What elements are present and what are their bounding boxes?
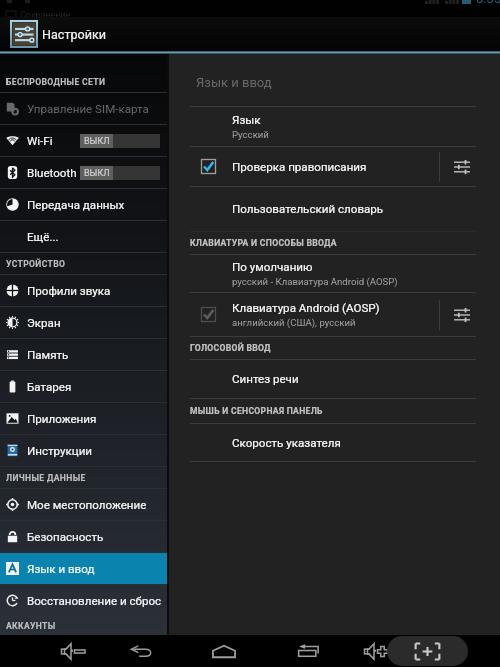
staticText: Батарея bbox=[27, 380, 72, 394]
button[interactable]: Экран bbox=[0, 307, 167, 338]
button[interactable]: Профили звука bbox=[0, 275, 167, 306]
staticText: Язык bbox=[232, 113, 261, 127]
staticText: Передача данных bbox=[27, 198, 125, 212]
button[interactable]: Инструкции bbox=[0, 435, 167, 466]
staticText: Bluetooth bbox=[27, 166, 77, 180]
staticText: Управление SIM-карта bbox=[27, 102, 149, 116]
staticText: ГОЛОСОВОЙ ВВОД bbox=[190, 343, 271, 353]
staticText: Восстановление и сброс bbox=[27, 594, 162, 608]
button[interactable]: Проверка правописания bbox=[169, 147, 500, 186]
button[interactable]: По умолчанию bbox=[169, 255, 500, 292]
staticText: Экран bbox=[27, 316, 61, 330]
staticText: Язык и ввод bbox=[27, 562, 95, 576]
staticText: Настройки bbox=[42, 27, 107, 42]
staticText: Русский bbox=[232, 129, 269, 140]
button[interactable]: Управление SIM-карта bbox=[0, 93, 167, 124]
staticText: КЛАВИАТУРА И СПОСОБЫ ВВОДА bbox=[190, 238, 337, 248]
button[interactable]: Ещё... bbox=[0, 221, 167, 252]
button[interactable]: Пользовательский словарь bbox=[169, 187, 500, 231]
button[interactable]: Recent apps bbox=[288, 635, 328, 667]
staticText: английский (США), русский bbox=[232, 317, 356, 328]
button[interactable]: Передача данных bbox=[0, 189, 167, 220]
staticText: Клавиатура Android (AOSP) bbox=[232, 301, 380, 315]
staticText: Язык и ввод bbox=[196, 75, 272, 90]
button[interactable]: Keyboard settings bbox=[440, 293, 484, 336]
button[interactable]: Home bbox=[204, 635, 244, 667]
staticText: АККАУНТЫ bbox=[6, 621, 56, 631]
button[interactable]: Wi-Fi bbox=[0, 125, 167, 156]
button[interactable]: Восстановление и сброс bbox=[0, 585, 167, 616]
button[interactable]: Bluetooth bbox=[0, 157, 167, 188]
staticText: По умолчанию bbox=[232, 260, 313, 274]
staticText: 0:35 bbox=[476, 0, 500, 6]
button[interactable]: Язык bbox=[169, 107, 500, 146]
staticText: Ещё... bbox=[27, 230, 59, 244]
staticText: МЫШЬ И СЕНСОРНАЯ ПАНЕЛЬ bbox=[190, 406, 323, 416]
staticText: Инструкции bbox=[27, 444, 93, 458]
staticText: ВЫКЛ bbox=[84, 168, 110, 179]
staticText: Проверка правописания bbox=[232, 160, 367, 174]
button[interactable]: Screenshot bbox=[387, 636, 468, 666]
staticText: русский - Клавиатура Android (AOSP) bbox=[232, 276, 398, 287]
staticText: ЛИЧНЫЕ ДАННЫЕ bbox=[6, 473, 86, 483]
button[interactable]: Приложения bbox=[0, 403, 167, 434]
button[interactable]: Память bbox=[0, 339, 167, 370]
button[interactable]: Синтез речи bbox=[169, 360, 500, 398]
staticText: Wi-Fi bbox=[27, 134, 53, 148]
button[interactable]: Скорость указателя bbox=[169, 424, 500, 461]
button[interactable]: Back bbox=[121, 635, 161, 667]
staticText: Приложения bbox=[27, 412, 97, 426]
button[interactable]: Settings app icon bbox=[10, 20, 38, 48]
staticText: Память bbox=[27, 348, 69, 362]
staticText: Мое местоположение bbox=[27, 498, 147, 512]
staticText: УСТРОЙСТВО bbox=[6, 259, 66, 269]
staticText: Пользовательский словарь bbox=[232, 202, 384, 216]
button[interactable]: Volume up bbox=[356, 635, 396, 667]
staticText: Сохранение bbox=[20, 10, 71, 21]
staticText: Синтез речи bbox=[232, 372, 299, 386]
button[interactable]: Клавиатура Android (AOSP) bbox=[169, 293, 500, 336]
staticText: БЕСПРОВОДНЫЕ СЕТИ bbox=[6, 77, 106, 87]
staticText: ВЫКЛ bbox=[84, 136, 110, 147]
button[interactable]: Мое местоположение bbox=[0, 489, 167, 520]
staticText: Безопасность bbox=[27, 530, 104, 544]
staticText: Скорость указателя bbox=[232, 436, 341, 450]
button[interactable]: Безопасность bbox=[0, 521, 167, 552]
staticText: Профили звука bbox=[27, 284, 111, 298]
button[interactable]: Батарея bbox=[0, 371, 167, 402]
button[interactable]: Keyboard settings bbox=[440, 147, 484, 186]
button[interactable]: Volume down bbox=[53, 635, 93, 667]
button[interactable]: Язык и ввод bbox=[0, 553, 167, 584]
